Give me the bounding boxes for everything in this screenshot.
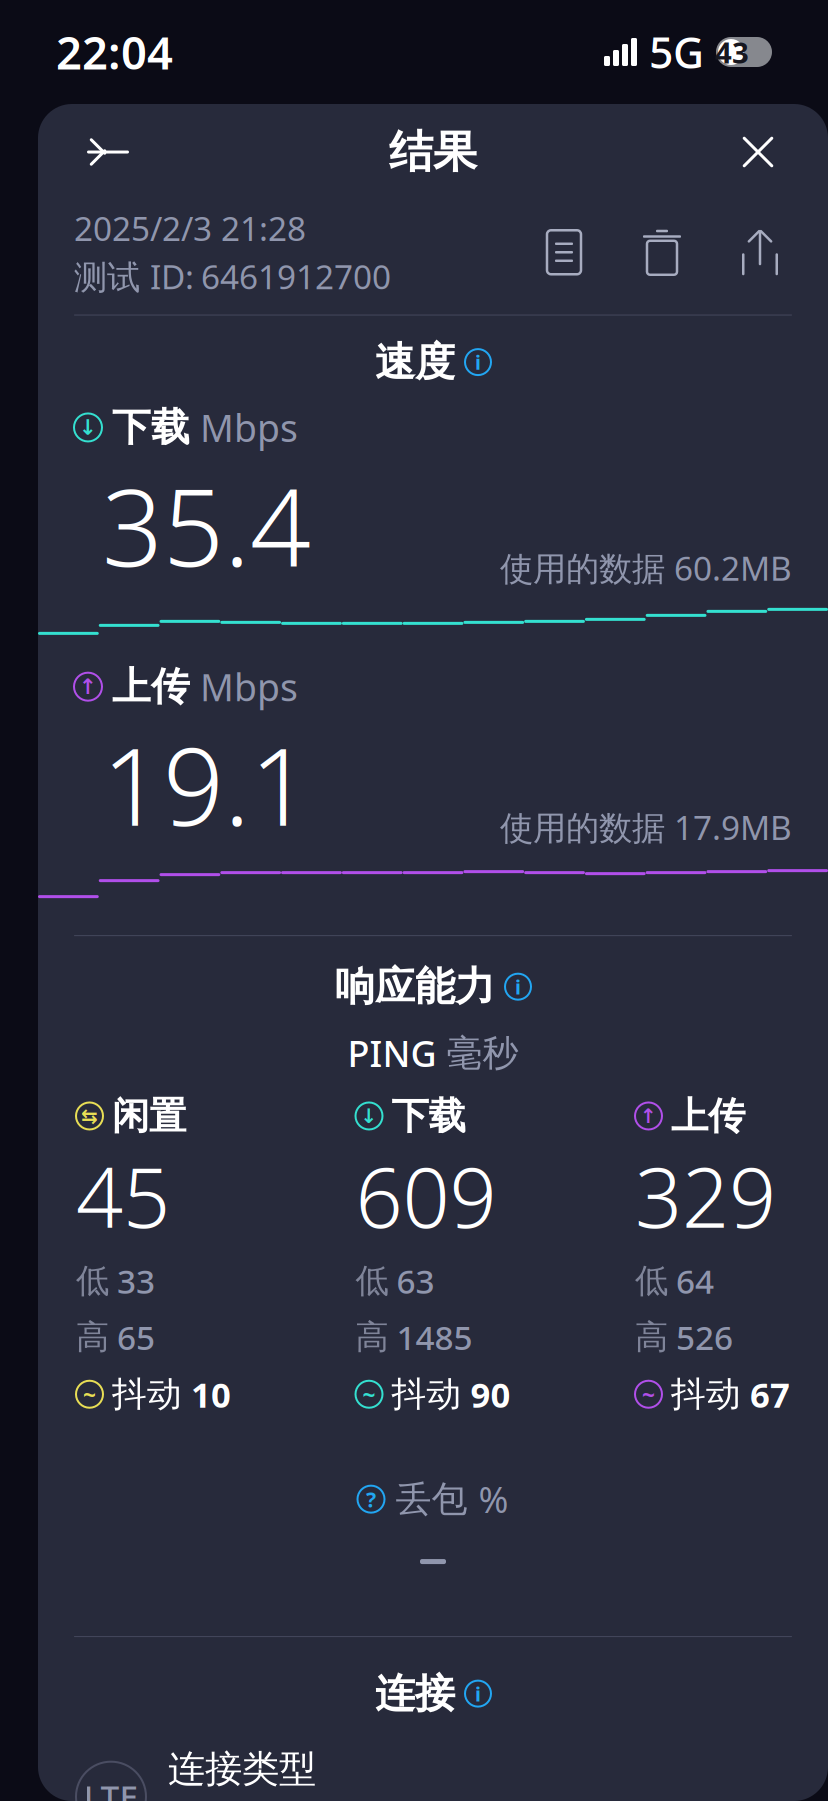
staticText: 35.4 xyxy=(102,454,311,596)
staticText: 19.1 xyxy=(102,713,311,855)
staticText: i xyxy=(475,349,481,375)
staticText: 低 xyxy=(635,1260,668,1301)
staticText: 63 xyxy=(396,1259,434,1303)
button[interactable]: 关于响应能力的信息 xyxy=(505,974,531,1000)
staticText: 526 xyxy=(676,1315,733,1359)
staticText: 90 xyxy=(470,1371,510,1417)
staticText: 2025/2/3 21:28 xyxy=(74,206,306,250)
staticText: LTE xyxy=(83,1774,138,1801)
staticText: 丢包 xyxy=(395,1477,467,1521)
staticText: 1485 xyxy=(396,1315,472,1359)
button[interactable]: 关于丢包的信息 xyxy=(357,1486,384,1513)
button[interactable]: 关于速度的信息 xyxy=(465,349,491,375)
staticText: 上传 xyxy=(112,663,190,710)
staticText: 65 xyxy=(117,1315,155,1359)
staticText: Mbps xyxy=(200,662,298,711)
staticText: ~ xyxy=(642,1379,655,1409)
button[interactable]: 删除 xyxy=(630,220,694,284)
staticText: ↑ xyxy=(79,675,97,699)
staticText: 下载 xyxy=(391,1093,465,1139)
staticText: 使用的数据 17.9MB xyxy=(500,805,792,849)
staticText: 低 xyxy=(355,1260,388,1301)
button[interactable]: 关于连接的信息 xyxy=(465,1681,491,1707)
staticText: 22:04 xyxy=(56,22,173,82)
staticText: 高 xyxy=(635,1317,668,1357)
staticText: PING xyxy=(347,1029,436,1077)
staticText: 329 xyxy=(635,1141,776,1251)
staticText: 低 xyxy=(76,1260,109,1301)
staticText: ⇆ xyxy=(81,1105,98,1127)
staticText: % xyxy=(478,1475,508,1523)
staticText: 使用的数据 60.2MB xyxy=(500,546,792,590)
staticText: 抖动 xyxy=(671,1373,741,1415)
staticText: 6461912700 xyxy=(201,254,391,299)
button[interactable]: 详情 xyxy=(532,220,596,284)
staticText: 609 xyxy=(355,1141,496,1251)
staticText: ↓ xyxy=(79,415,97,439)
staticText: 33 xyxy=(117,1259,155,1303)
staticText: 下载 xyxy=(112,404,190,451)
staticText: 测试 ID: xyxy=(74,254,194,299)
staticText: 速度 xyxy=(375,337,455,387)
staticText: 连接类型 xyxy=(168,1746,316,1792)
staticText: 抖动 xyxy=(112,1373,182,1415)
staticText: 响应能力 xyxy=(335,962,495,1011)
staticText: 毫秒 xyxy=(446,1031,518,1075)
staticText: 64 xyxy=(676,1259,714,1303)
staticText: 67 xyxy=(750,1371,790,1417)
staticText: ~ xyxy=(362,1379,375,1409)
button[interactable]: 关闭 xyxy=(722,116,794,188)
staticText: Mbps xyxy=(200,403,298,452)
staticText: ↓ xyxy=(360,1105,377,1127)
staticText: ↑ xyxy=(640,1105,657,1127)
staticText: i xyxy=(515,973,521,1000)
staticText: ~ xyxy=(83,1379,96,1409)
staticText: 高 xyxy=(355,1317,388,1357)
staticText: ? xyxy=(366,1485,376,1513)
staticText: 上传 xyxy=(671,1093,745,1139)
staticText: 10 xyxy=(191,1371,231,1417)
staticText: 结果 xyxy=(389,125,477,179)
staticText: 连接 xyxy=(375,1669,455,1718)
staticText: i xyxy=(475,1680,481,1707)
staticText: 闲置 xyxy=(112,1093,186,1139)
button[interactable]: 返回 xyxy=(72,116,144,188)
staticText: 43 xyxy=(715,32,749,71)
staticText: 5G xyxy=(649,24,704,80)
staticText: 45 xyxy=(76,1141,170,1251)
staticText: 高 xyxy=(76,1317,109,1357)
button[interactable]: 分享 xyxy=(728,220,792,284)
staticText: 抖动 xyxy=(391,1373,461,1415)
